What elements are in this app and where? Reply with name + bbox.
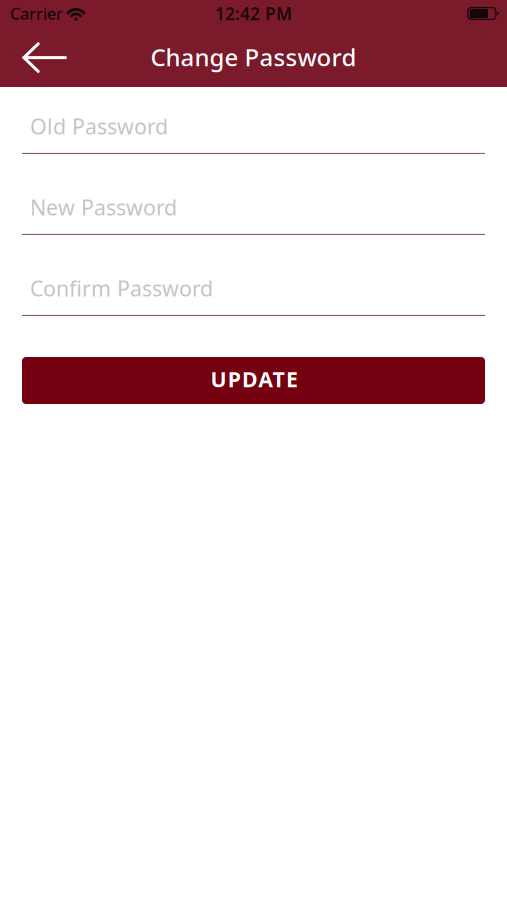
- staticText: New Password: [30, 193, 177, 221]
- button[interactable]: Back: [0, 27, 81, 87]
- staticText: Old Password: [30, 112, 168, 140]
- button[interactable]: New Password: [22, 193, 485, 235]
- staticText: Carrier: [10, 3, 63, 24]
- staticText: 12:42 PM: [215, 2, 292, 25]
- button[interactable]: UPDATE: [22, 357, 485, 404]
- staticText: Change Password: [150, 41, 356, 73]
- staticText: Confirm Password: [30, 274, 213, 302]
- button[interactable]: Confirm Password: [22, 274, 485, 316]
- button[interactable]: Old Password: [22, 112, 485, 154]
- staticText: UPDATE: [210, 365, 298, 393]
